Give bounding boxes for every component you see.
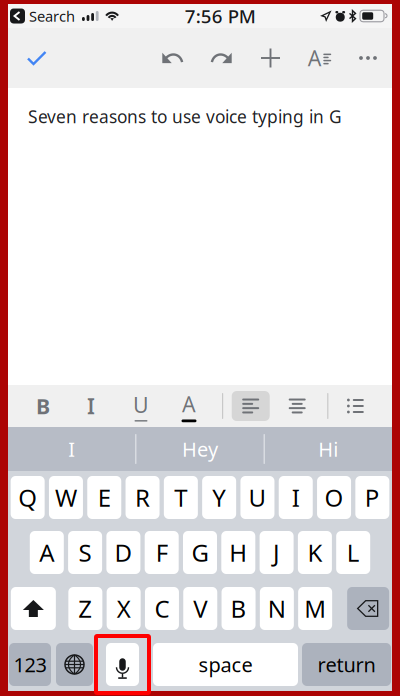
staticText: B (230, 593, 246, 624)
staticText: I (87, 392, 95, 420)
staticText: S (79, 537, 92, 568)
staticText: Hey (182, 436, 218, 462)
button[interactable]: F (145, 531, 179, 574)
button[interactable]: Next keyboard (56, 643, 93, 686)
button[interactable]: B (20, 385, 66, 427)
button[interactable]: M (298, 587, 332, 630)
button[interactable]: Redo (197, 28, 246, 88)
button[interactable]: Undo (148, 28, 197, 88)
staticText: F (156, 537, 168, 568)
button[interactable]: return (302, 643, 391, 686)
button[interactable]: T (164, 476, 198, 519)
button[interactable]: Shift (11, 587, 56, 630)
button[interactable]: Y (202, 476, 236, 519)
staticText: A (182, 390, 196, 418)
staticText: A (308, 44, 322, 72)
button[interactable]: D (106, 531, 140, 574)
staticText: R (135, 482, 150, 513)
button[interactable]: Insert (246, 28, 295, 88)
button[interactable]: B (221, 587, 255, 630)
button[interactable]: Done (12, 28, 62, 88)
button[interactable]: A (166, 385, 212, 427)
staticText: O (325, 482, 344, 513)
staticText: U (248, 482, 266, 513)
button[interactable]: L (336, 531, 370, 574)
button[interactable]: V (183, 587, 217, 630)
staticText: E (98, 482, 111, 513)
button[interactable]: W (49, 476, 83, 519)
button[interactable]: X (107, 587, 141, 630)
button[interactable]: H (221, 531, 255, 574)
staticText: 7:56 PM (185, 4, 256, 28)
button[interactable]: Q (11, 476, 45, 519)
button[interactable]: R (125, 476, 159, 519)
staticText: T (174, 482, 187, 513)
button[interactable]: Delete (347, 587, 389, 630)
button[interactable]: Text formatting (295, 28, 344, 88)
button[interactable]: Search (10, 6, 75, 26)
button[interactable]: G (183, 531, 217, 574)
staticText: Seven reasons to use voice typing in G (28, 105, 342, 128)
staticText: K (307, 537, 322, 568)
button[interactable]: Align center (271, 385, 323, 427)
button[interactable]: 123 (9, 643, 51, 686)
staticText: W (55, 482, 77, 513)
button[interactable]: I (8, 427, 135, 471)
button[interactable]: P (355, 476, 389, 519)
button[interactable]: J (260, 531, 294, 574)
button[interactable]: U (240, 476, 274, 519)
button[interactable]: A (30, 531, 64, 574)
staticText: P (365, 482, 380, 513)
button[interactable]: Hi (265, 427, 392, 471)
button[interactable]: Hey (136, 427, 264, 471)
staticText: A (39, 537, 54, 568)
staticText: U (133, 390, 149, 419)
staticText: D (114, 537, 132, 568)
staticText: 123 (13, 651, 46, 678)
button[interactable]: Bulleted list (333, 385, 377, 427)
button[interactable]: U (116, 385, 166, 427)
staticText: C (154, 593, 169, 624)
button[interactable]: S (68, 531, 102, 574)
staticText: L (347, 537, 360, 568)
button[interactable]: C (145, 587, 179, 630)
button[interactable]: More options (344, 28, 392, 88)
button[interactable]: space (153, 643, 298, 686)
staticText: I (68, 436, 75, 462)
button[interactable]: Align left (230, 385, 271, 427)
staticText: return (317, 651, 375, 678)
staticText: Q (18, 482, 37, 513)
staticText: I (292, 482, 300, 513)
staticText: J (273, 537, 280, 568)
staticText: N (268, 593, 286, 624)
button[interactable]: Z (68, 587, 102, 630)
button[interactable]: E (87, 476, 121, 519)
button[interactable]: N (260, 587, 294, 630)
staticText: V (193, 593, 207, 624)
staticText: Y (212, 482, 226, 513)
staticText: Search (29, 6, 75, 26)
staticText: H (229, 537, 247, 568)
button[interactable]: O (317, 476, 351, 519)
staticText: M (304, 593, 326, 624)
staticText: Z (78, 593, 92, 624)
button[interactable]: I (279, 476, 313, 519)
button[interactable]: Dictate (106, 643, 139, 686)
staticText: Hi (318, 436, 338, 462)
button[interactable]: I (66, 385, 116, 427)
staticText: space (198, 651, 252, 678)
staticText: B (36, 392, 50, 420)
staticText: G (191, 537, 208, 568)
staticText: X (117, 593, 131, 624)
button[interactable]: K (298, 531, 332, 574)
